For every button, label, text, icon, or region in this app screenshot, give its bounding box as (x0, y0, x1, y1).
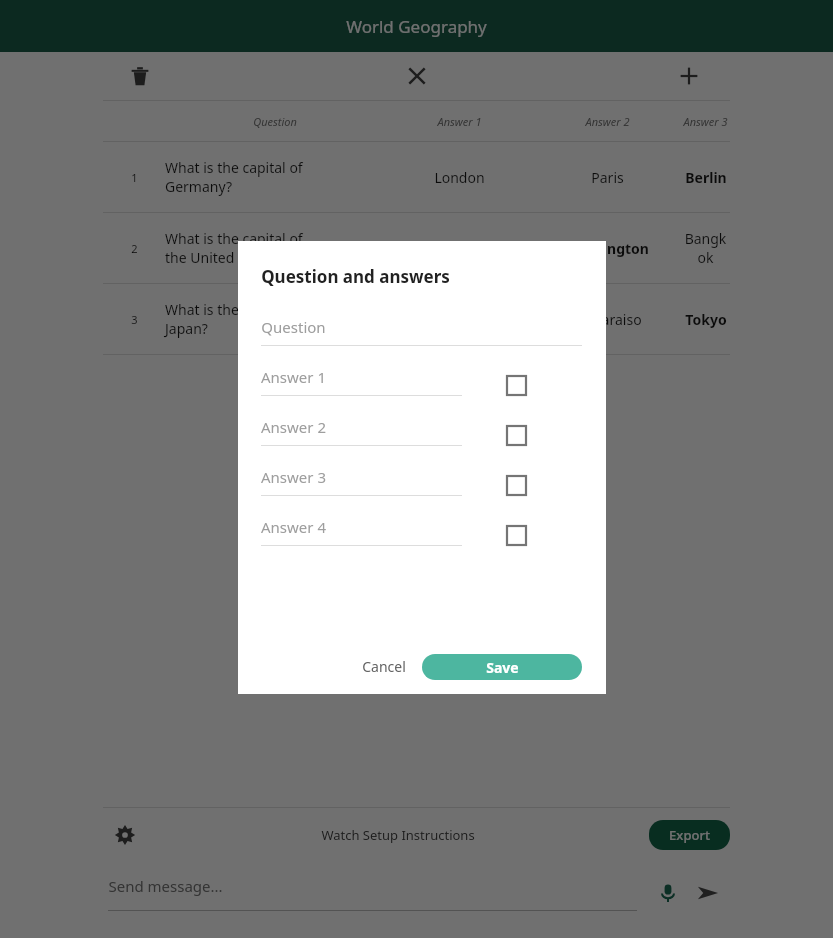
staticText: Save (486, 658, 519, 677)
button[interactable]: Correct answer Answer 4 (498, 517, 534, 553)
button[interactable]: Close (312, 52, 521, 100)
staticText: Watch Setup Instructions (321, 826, 475, 844)
staticText: Answer 3 (683, 114, 728, 129)
button[interactable]: Correct answer Answer 1 (498, 367, 534, 403)
button[interactable]: Add (521, 52, 730, 100)
button[interactable]: Correct answer Answer 2 (498, 417, 534, 453)
staticText: What is the capital of Japan? (165, 300, 303, 338)
button[interactable]: 1 (103, 142, 730, 212)
staticText: World Geography (346, 15, 487, 38)
staticText: 1 (131, 170, 138, 185)
button[interactable]: Save (422, 654, 582, 680)
staticText: Question (253, 114, 297, 129)
button[interactable]: Export (649, 820, 730, 850)
staticText: Answer 1 (437, 114, 482, 129)
staticText: Tokyo (685, 310, 727, 329)
staticText: Answer 2 (261, 417, 326, 437)
staticText: New York (428, 239, 490, 258)
staticText: What is the capital of Germany? (165, 158, 303, 196)
button[interactable]: 3 (103, 284, 730, 354)
staticText: Answer 4 (261, 517, 326, 537)
staticText: Paris (591, 168, 624, 187)
button[interactable]: Answer 2 (261, 417, 462, 445)
button[interactable]: Send (691, 876, 725, 910)
staticText: Send message... (108, 876, 223, 896)
button[interactable]: Settings (103, 813, 147, 857)
staticText: Answer 3 (261, 467, 326, 487)
staticText: Valparaiso (573, 310, 642, 329)
button[interactable]: Correct answer Answer 3 (498, 467, 534, 503)
button[interactable]: Voice input (651, 876, 685, 910)
button[interactable]: Answer 4 (261, 517, 462, 545)
staticText: Question (261, 317, 326, 337)
staticText: 3 (131, 312, 138, 327)
staticText: Export (669, 826, 710, 844)
button[interactable]: Answer 1 (261, 367, 462, 395)
button[interactable]: Question (261, 317, 582, 345)
button[interactable]: Cancel (352, 651, 416, 682)
staticText: Washington (565, 239, 649, 258)
button[interactable]: Watch Setup Instructions (317, 822, 479, 848)
staticText: What is the capital of the United States… (165, 229, 303, 267)
staticText: Berlin (685, 168, 727, 187)
staticText: Answer 2 (585, 114, 630, 129)
button[interactable]: Answer 3 (261, 467, 462, 495)
staticText: Bangkok (681, 229, 730, 267)
staticText: Cancel (362, 657, 406, 676)
button[interactable]: Delete (103, 52, 312, 100)
button[interactable]: Send message... (108, 876, 637, 896)
staticText: London (434, 168, 485, 187)
staticText: Answer 1 (261, 367, 326, 387)
staticText: Question and answers (261, 265, 450, 288)
staticText: 2 (131, 241, 138, 256)
button[interactable]: 2 (103, 213, 730, 283)
